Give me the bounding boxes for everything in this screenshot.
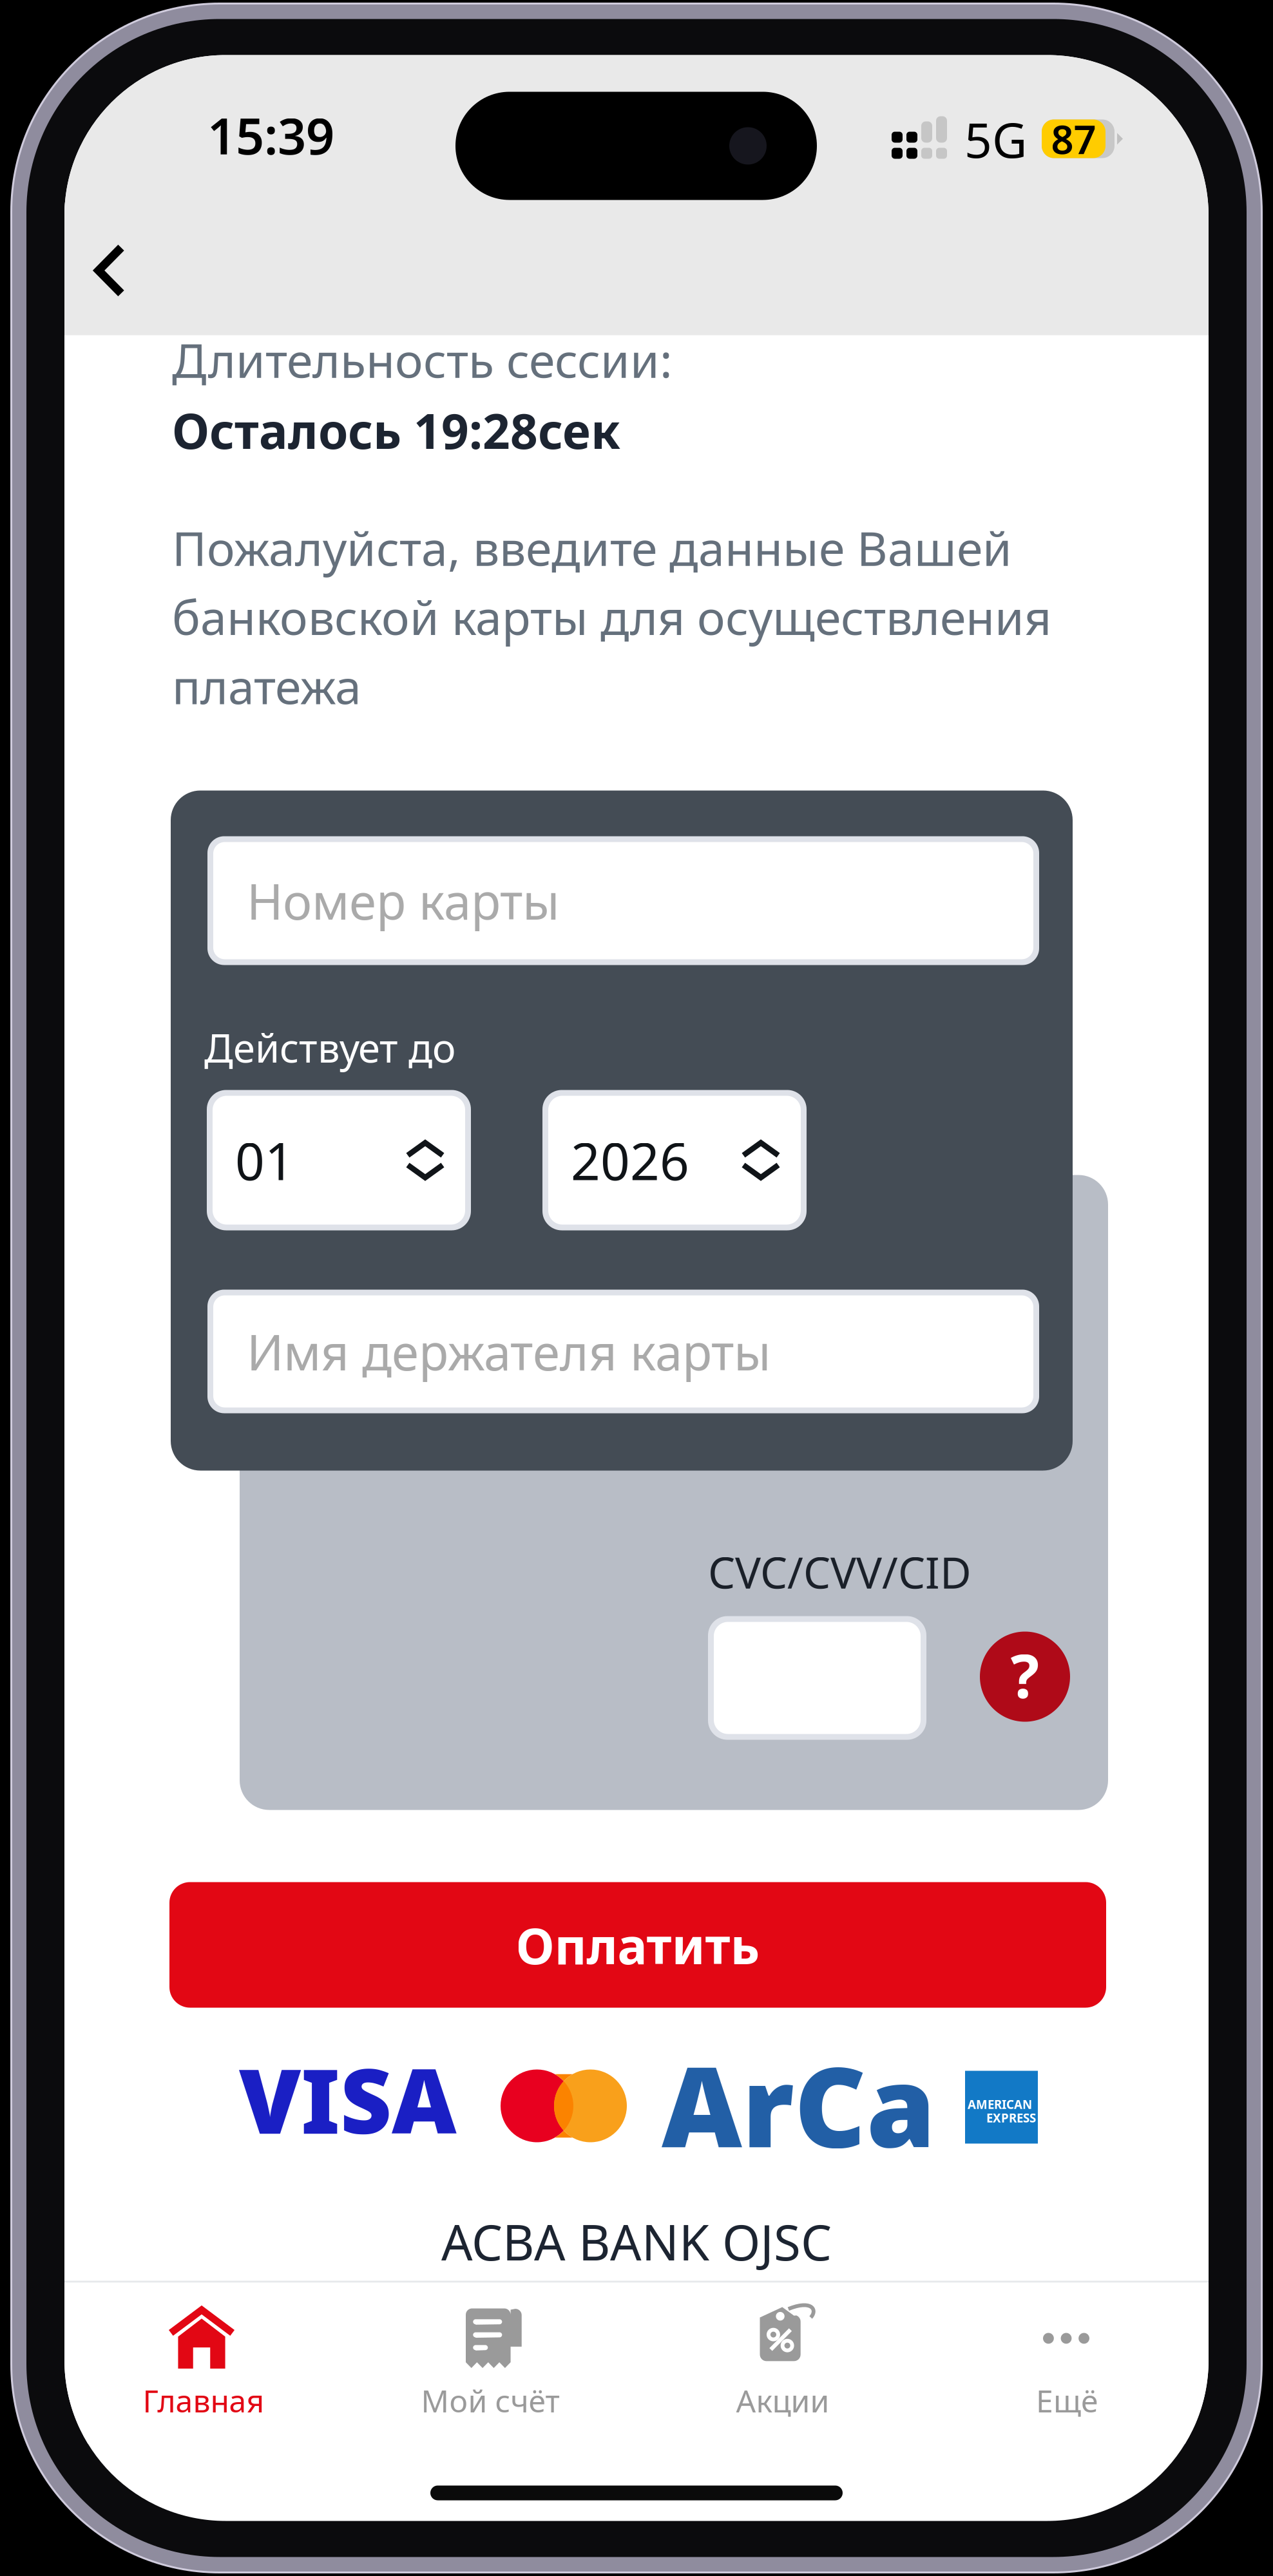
staticText: Номер карты (247, 868, 560, 933)
staticText: Мой счёт (421, 2380, 560, 2421)
button[interactable]: Ещё (923, 2283, 1209, 2444)
staticText: ArCa (662, 2031, 935, 2178)
staticText: Действует до (204, 1021, 455, 1073)
staticText: ? (1010, 1635, 1039, 1715)
staticText: Ещё (1036, 2380, 1098, 2421)
button[interactable]: Back (64, 202, 161, 298)
button[interactable]: What is CVC (979, 1630, 1071, 1723)
staticText: Оплатить (516, 1912, 760, 1978)
button[interactable]: Главная (64, 2283, 350, 2444)
staticText: 15:39 (207, 102, 334, 168)
staticText: Пожалуйста, введите данные Вашей банковс… (172, 516, 1051, 717)
staticText: Главная (143, 2380, 264, 2421)
staticText: VISA (239, 2040, 457, 2158)
staticText: Имя держателя карты (247, 1319, 771, 1384)
staticText: Осталось 19:28сек (172, 398, 620, 462)
staticText: 87 (1051, 113, 1096, 165)
staticText: Акции (736, 2380, 829, 2421)
staticText: 5G (964, 107, 1027, 171)
button[interactable]: Мой счёт (350, 2283, 636, 2444)
staticText: ACBA BANK OJSC (441, 2209, 832, 2274)
staticText: Длительность сессии: (172, 328, 673, 391)
staticText: EXPRESS (986, 2110, 1036, 2126)
staticText: AMERICAN (968, 2096, 1032, 2112)
button[interactable]: Оплатить (169, 1882, 1106, 2008)
staticText: 01 (235, 1126, 294, 1194)
button[interactable]: Акции (636, 2283, 923, 2444)
staticText: 2026 (571, 1126, 689, 1194)
staticText: CVC/CVV/CID (708, 1543, 972, 1600)
